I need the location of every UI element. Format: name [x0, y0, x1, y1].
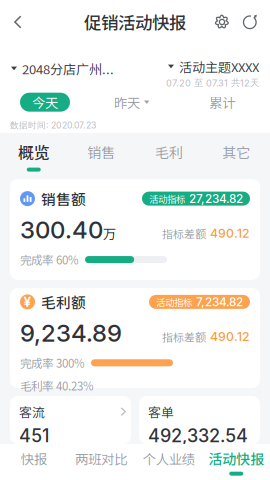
staticText: 毛利额	[41, 291, 86, 312]
staticText: 9,234.89	[20, 318, 122, 347]
staticText: 451	[19, 425, 49, 447]
staticText: 活动主题XXXX	[179, 57, 259, 76]
staticText: 毛利	[155, 142, 183, 162]
button[interactable]: 客流	[10, 396, 131, 444]
button[interactable]: 个人业绩	[135, 444, 202, 480]
staticText: 490.12	[210, 329, 250, 344]
button[interactable]: 设置	[208, 0, 236, 44]
button[interactable]: 概览	[0, 133, 67, 179]
staticText: 销售额	[41, 188, 86, 209]
staticText: 完成率 300%	[20, 354, 85, 371]
staticText: 概览	[18, 140, 50, 164]
staticText: 销售	[87, 142, 115, 162]
staticText: 昨天	[114, 92, 140, 112]
staticText: 27,234.82	[189, 191, 243, 206]
staticText: 万	[103, 223, 116, 243]
staticText: 活动快报	[208, 448, 264, 469]
staticText: 492,332.54	[148, 425, 248, 447]
button[interactable]: 今天	[20, 93, 70, 112]
staticText: 指标差额	[162, 225, 206, 241]
button[interactable]: 活动主题XXXX	[168, 57, 259, 76]
staticText: 7,234.82	[196, 295, 243, 309]
staticText: 个人业绩	[143, 449, 195, 468]
button[interactable]: 昨天	[114, 94, 149, 111]
button[interactable]: 两班对比	[67, 444, 135, 480]
staticText: 490.12	[210, 226, 250, 241]
staticText: 其它	[222, 142, 250, 162]
button[interactable]: 客单	[139, 396, 260, 444]
staticText: 数据时间: 2020.07.23	[10, 120, 96, 131]
staticText: 07.20 至 07.31 共12天	[166, 77, 259, 89]
staticText: 客单	[148, 402, 174, 421]
staticText: 客流	[19, 402, 45, 421]
staticText: 2048分店广州...	[22, 59, 114, 78]
button[interactable]: 返回	[0, 0, 36, 44]
button[interactable]: 刷新	[236, 0, 264, 44]
staticText: 促销活动快报	[84, 9, 186, 35]
staticText: 活动指标	[156, 295, 192, 309]
staticText: 活动指标	[149, 192, 185, 205]
staticText: 两班对比	[75, 449, 127, 468]
staticText: 毛利率 40.23%	[20, 377, 94, 394]
staticText: 今天	[32, 92, 58, 112]
staticText: 300.40	[20, 215, 103, 244]
button[interactable]: 快报	[0, 444, 67, 480]
button[interactable]: 销售	[67, 133, 135, 179]
staticText: 快报	[21, 449, 47, 468]
staticText: ¥	[23, 294, 31, 310]
button[interactable]: 活动快报	[202, 444, 270, 480]
button[interactable]: 累计	[209, 94, 235, 111]
button[interactable]: 毛利	[135, 133, 202, 179]
staticText: 完成率 60%	[20, 251, 79, 268]
button[interactable]: 2048分店广州...	[0, 57, 114, 78]
staticText: 指标差额	[162, 329, 206, 344]
button[interactable]: 其它	[202, 133, 270, 179]
staticText: 累计	[209, 92, 235, 112]
